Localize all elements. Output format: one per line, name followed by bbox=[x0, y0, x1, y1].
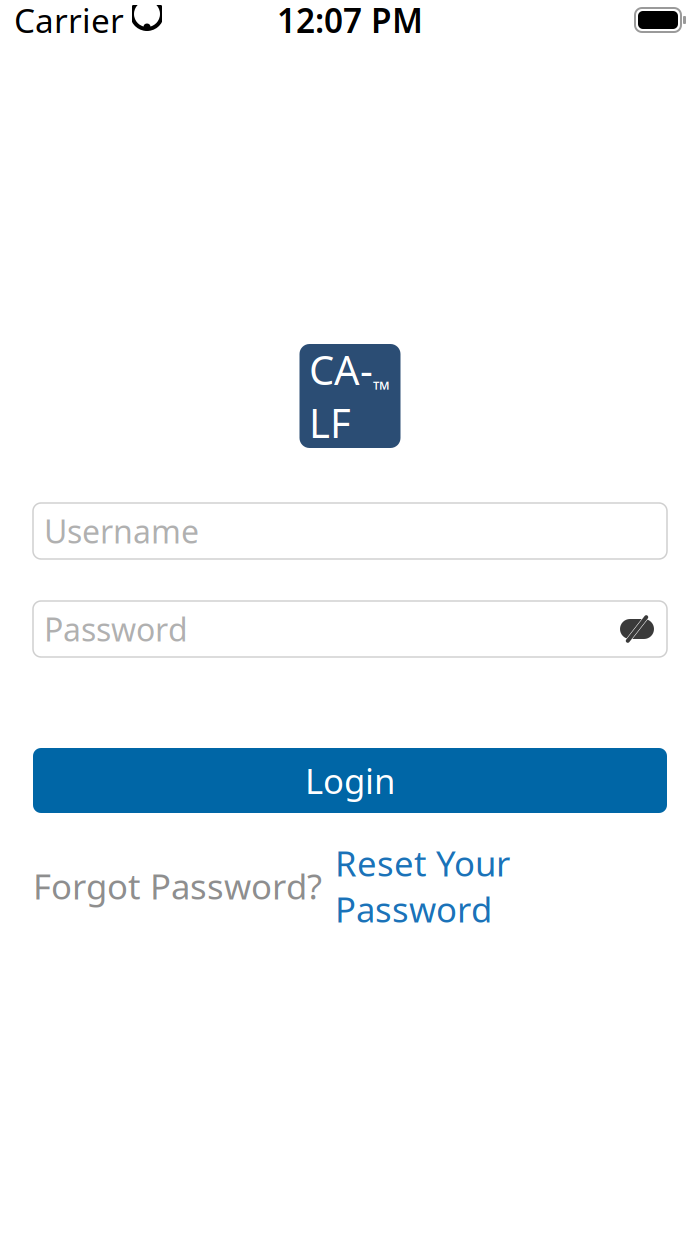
staticText: Username bbox=[44, 510, 199, 552]
staticText: Forgot Password? bbox=[33, 863, 322, 909]
button[interactable]: Login bbox=[33, 748, 667, 813]
staticText: Carrier bbox=[14, 0, 124, 42]
button[interactable]: Show password bbox=[610, 602, 664, 656]
staticText: Password bbox=[44, 608, 188, 650]
button[interactable]: Reset Your Password bbox=[335, 840, 510, 932]
staticText: Reset Your Password bbox=[335, 840, 510, 932]
staticText: 12:07 PM bbox=[277, 0, 423, 42]
staticText: CALF bbox=[309, 343, 373, 449]
staticText: Login bbox=[305, 757, 395, 803]
staticText: ™ bbox=[373, 374, 391, 404]
